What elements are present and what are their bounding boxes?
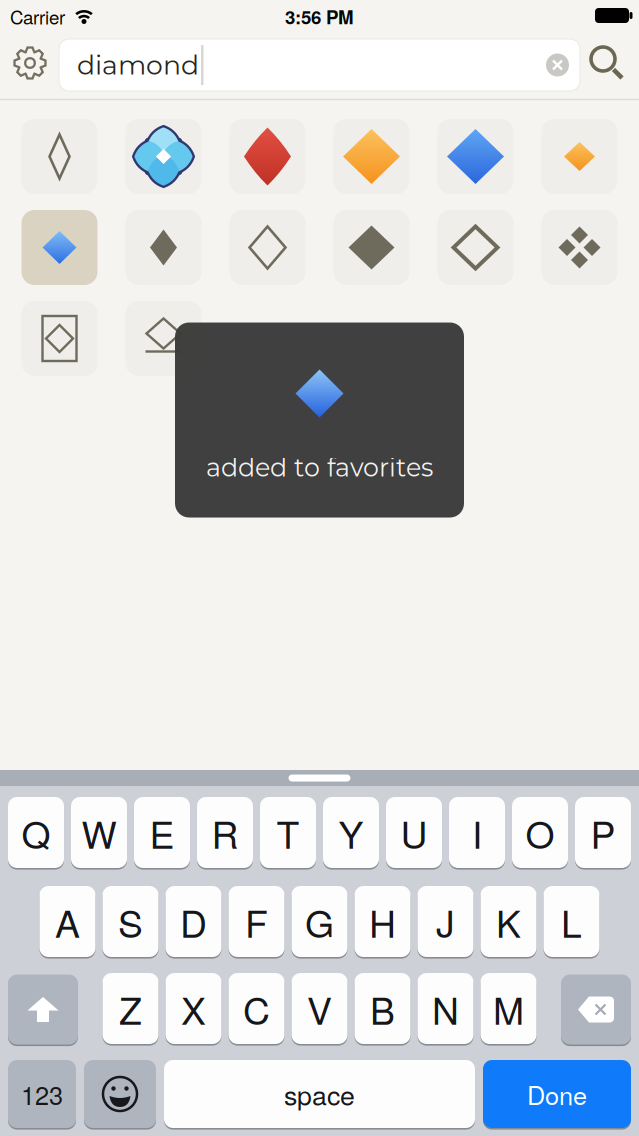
button[interactable]: X <box>165 972 221 1045</box>
staticText: space <box>284 1075 355 1113</box>
staticText: Z <box>119 982 142 1035</box>
button[interactable]: U <box>386 796 442 869</box>
staticText: T <box>276 806 299 859</box>
button[interactable]: Done <box>483 1059 631 1129</box>
button[interactable]: Settings <box>14 47 46 79</box>
button[interactable]: Diamond in rectangle <box>21 301 97 376</box>
staticText: N <box>432 982 459 1035</box>
staticText: M <box>493 982 524 1035</box>
button[interactable]: D <box>165 885 221 958</box>
staticText: I <box>472 806 482 859</box>
button[interactable]: White diamond suit <box>229 210 305 285</box>
button[interactable]: G <box>291 885 347 958</box>
button[interactable]: Search <box>590 46 626 82</box>
staticText: added to favorites <box>206 452 433 483</box>
staticText: U <box>400 806 427 859</box>
button[interactable]: Z <box>102 972 158 1045</box>
button[interactable]: Y <box>323 796 379 869</box>
staticText: O <box>525 806 554 859</box>
staticText: R <box>211 806 238 859</box>
button[interactable]: F <box>228 885 284 958</box>
staticText: V <box>307 982 332 1035</box>
button[interactable]: Diamond with a dot <box>125 119 201 194</box>
button[interactable]: Black diamond suit <box>125 210 201 285</box>
button[interactable]: White diamond <box>21 119 97 194</box>
staticText: G <box>305 895 334 948</box>
button[interactable]: L <box>543 885 599 958</box>
staticText: P <box>590 806 615 859</box>
button[interactable]: space <box>164 1059 475 1129</box>
button[interactable]: J <box>417 885 473 958</box>
staticText: H <box>369 895 396 948</box>
staticText: Carrier <box>10 3 65 30</box>
button[interactable]: N <box>417 972 473 1045</box>
staticText: K <box>496 895 521 948</box>
button[interactable]: V <box>291 972 347 1045</box>
button[interactable]: Small blue diamond <box>21 210 97 285</box>
button[interactable]: I <box>449 796 505 869</box>
staticText: D <box>180 895 207 948</box>
button[interactable]: T <box>260 796 316 869</box>
staticText: B <box>370 982 395 1035</box>
staticText: diamond <box>77 49 199 81</box>
staticText: F <box>245 895 268 948</box>
button[interactable]: Shift <box>8 973 78 1045</box>
button[interactable]: 123 <box>8 1059 76 1129</box>
button[interactable]: K <box>480 885 536 958</box>
button[interactable]: H <box>354 885 410 958</box>
button[interactable]: Four diamonds <box>541 210 617 285</box>
button[interactable]: S <box>102 885 158 958</box>
button[interactable]: R <box>197 796 253 869</box>
staticText: Q <box>21 806 50 859</box>
button[interactable]: B <box>354 972 410 1045</box>
button[interactable]: Q <box>8 796 64 869</box>
staticText: 3:56 PM <box>285 3 354 30</box>
button[interactable]: W <box>71 796 127 869</box>
button[interactable]: O <box>512 796 568 869</box>
staticText: Y <box>338 806 363 859</box>
staticText: Done <box>527 1076 587 1112</box>
staticText: S <box>118 895 143 948</box>
staticText: J <box>436 895 455 948</box>
button[interactable]: Clear text <box>546 53 569 76</box>
button[interactable]: White diamond outline <box>437 210 513 285</box>
button[interactable]: C <box>228 972 284 1045</box>
staticText: A <box>55 895 80 948</box>
button[interactable]: Red diamond suit <box>229 119 305 194</box>
staticText: W <box>81 806 116 859</box>
button[interactable]: Small orange diamond <box>541 119 617 194</box>
staticText: C <box>243 982 270 1035</box>
button[interactable]: Diamond with underline <box>125 301 201 376</box>
button[interactable]: Delete <box>561 973 631 1045</box>
button[interactable]: Large blue diamond <box>437 119 513 194</box>
staticText: X <box>181 982 206 1035</box>
button[interactable]: E <box>134 796 190 869</box>
button[interactable]: A <box>39 885 95 958</box>
button[interactable]: M <box>480 972 536 1045</box>
button[interactable]: Black diamond <box>333 210 409 285</box>
staticText: E <box>149 806 174 859</box>
staticText: 123 <box>21 1076 63 1112</box>
button[interactable]: P <box>575 796 631 869</box>
button[interactable]: Large orange diamond <box>333 119 409 194</box>
staticText: L <box>561 895 582 948</box>
button[interactable]: Emoji <box>84 1059 156 1129</box>
